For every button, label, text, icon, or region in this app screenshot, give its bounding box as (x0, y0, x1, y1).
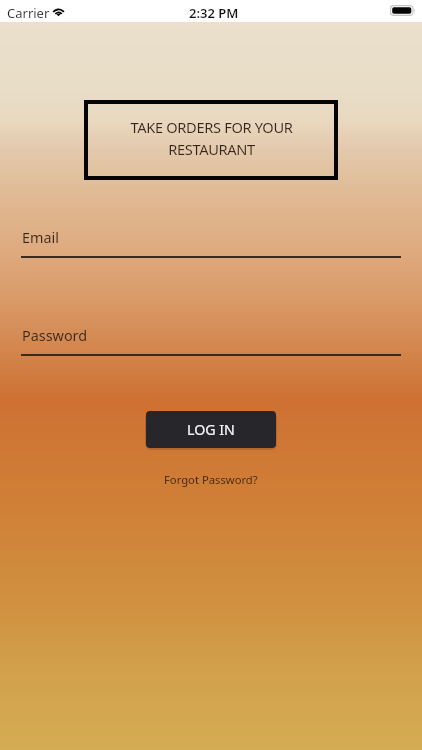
button[interactable]: Password (21, 326, 401, 346)
staticText: Forgot Password? (164, 472, 258, 487)
staticText: Carrier (7, 4, 50, 22)
other: Battery full (390, 5, 416, 16)
button[interactable]: TAKE ORDERS FOR YOUR RESTAURANT (84, 100, 338, 180)
staticText: Email (22, 228, 59, 248)
other: Wi-Fi signal (51, 5, 66, 16)
staticText: 2:32 PM (189, 4, 239, 22)
button[interactable]: Forgot Password? (141, 469, 281, 489)
staticText: LOG IN (187, 420, 235, 439)
button[interactable]: LOG IN (146, 411, 276, 448)
staticText: Password (22, 326, 88, 346)
button[interactable]: Email (21, 228, 401, 248)
staticText: TAKE ORDERS FOR YOUR RESTAURANT (119, 117, 304, 159)
